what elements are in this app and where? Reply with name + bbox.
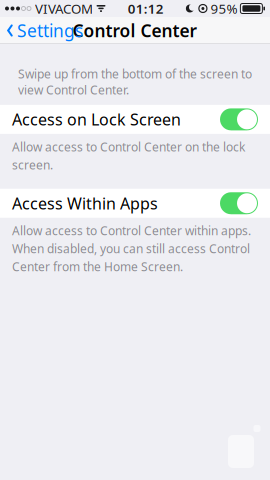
staticText: VIVACOM xyxy=(35,0,93,17)
staticText: Control Center xyxy=(72,19,197,42)
staticText: Settings xyxy=(17,19,83,42)
button[interactable]: Access on Lock Screen xyxy=(0,105,270,134)
staticText: 01:12 xyxy=(128,0,164,17)
button[interactable]: Settings xyxy=(0,14,83,47)
button[interactable]: Access Within Apps xyxy=(0,189,270,218)
staticText: 95% xyxy=(210,0,237,17)
staticText: Access Within Apps xyxy=(12,193,158,214)
staticText: Swipe up from the bottom of the screen t… xyxy=(18,66,252,98)
staticText: Allow access to Control Center on the lo… xyxy=(12,139,245,173)
staticText: Access on Lock Screen xyxy=(12,109,181,130)
staticText: Allow access to Control Center within ap… xyxy=(12,223,251,274)
